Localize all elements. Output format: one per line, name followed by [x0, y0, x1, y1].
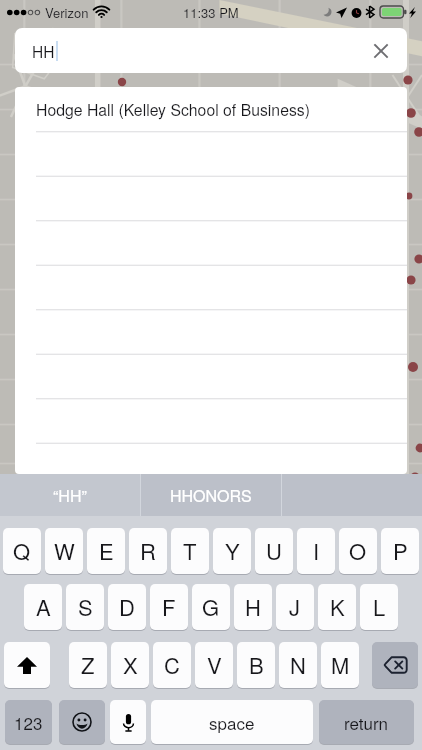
button[interactable]: Backspace: [372, 642, 418, 688]
button[interactable]: Y: [213, 528, 251, 574]
button[interactable]: O: [339, 528, 377, 574]
staticText: Hodge Hall (Kelley School of Business): [36, 98, 310, 121]
button[interactable]: F: [150, 584, 188, 630]
staticText: K: [330, 591, 345, 623]
button[interactable]: Emoji keyboard: [59, 700, 105, 744]
button[interactable]: [15, 221, 407, 266]
staticText: J: [289, 591, 301, 623]
button[interactable]: X: [111, 642, 149, 688]
button[interactable]: [15, 401, 407, 446]
button[interactable]: HHONORS: [141, 474, 281, 516]
staticText: R: [140, 535, 156, 567]
staticText: M: [331, 649, 350, 681]
staticText: L: [373, 591, 386, 623]
button[interactable]: [15, 356, 407, 401]
staticText: X: [123, 649, 138, 681]
button[interactable]: Q: [3, 528, 41, 574]
button[interactable]: M: [321, 642, 359, 688]
staticText: V: [207, 649, 222, 681]
staticText: H: [245, 591, 261, 623]
button[interactable]: return: [319, 700, 414, 744]
staticText: O: [349, 535, 367, 567]
staticText: return: [344, 710, 389, 734]
button[interactable]: K: [318, 584, 356, 630]
button[interactable]: Shift: [4, 642, 50, 688]
button[interactable]: P: [381, 528, 419, 574]
button[interactable]: A: [24, 584, 62, 630]
staticText: T: [183, 535, 197, 567]
staticText: N: [290, 649, 306, 681]
button[interactable]: N: [279, 642, 317, 688]
button[interactable]: “HH”: [0, 474, 140, 516]
button[interactable]: L: [360, 584, 398, 630]
button[interactable]: H: [234, 584, 272, 630]
button[interactable]: Dictate: [110, 700, 146, 744]
button[interactable]: [15, 176, 407, 221]
staticText: F: [162, 591, 176, 623]
button[interactable]: E: [87, 528, 125, 574]
button[interactable]: Clear search text: [366, 36, 396, 66]
button[interactable]: S: [66, 584, 104, 630]
staticText: C: [164, 649, 180, 681]
button[interactable]: HH: [15, 28, 407, 73]
button[interactable]: U: [255, 528, 293, 574]
button[interactable]: D: [108, 584, 146, 630]
button[interactable]: space: [151, 700, 313, 744]
button[interactable]: [15, 131, 407, 176]
staticText: “HH”: [53, 484, 87, 507]
staticText: B: [249, 649, 264, 681]
staticText: 11:33 PM: [183, 3, 239, 22]
staticText: HH: [32, 40, 55, 62]
staticText: G: [202, 591, 220, 623]
staticText: E: [99, 535, 114, 567]
button[interactable]: 123: [5, 700, 52, 744]
button[interactable]: [15, 311, 407, 356]
staticText: S: [78, 591, 93, 623]
button[interactable]: V: [195, 642, 233, 688]
button[interactable]: Hodge Hall (Kelley School of Business): [15, 87, 407, 131]
staticText: Q: [13, 535, 31, 567]
staticText: 123: [14, 710, 43, 734]
staticText: Y: [225, 535, 240, 567]
button[interactable]: C: [153, 642, 191, 688]
button[interactable]: J: [276, 584, 314, 630]
button[interactable]: G: [192, 584, 230, 630]
staticText: Z: [81, 649, 95, 681]
button[interactable]: R: [129, 528, 167, 574]
staticText: Verizon: [45, 3, 89, 22]
button[interactable]: I: [297, 528, 335, 574]
staticText: U: [266, 535, 282, 567]
button[interactable]: [15, 266, 407, 311]
staticText: HHONORS: [170, 484, 252, 507]
button[interactable]: T: [171, 528, 209, 574]
staticText: space: [209, 710, 255, 734]
staticText: I: [313, 535, 320, 567]
staticText: D: [119, 591, 135, 623]
button[interactable]: B: [237, 642, 275, 688]
staticText: W: [54, 535, 75, 567]
button[interactable]: Z: [69, 642, 107, 688]
button[interactable]: W: [45, 528, 83, 574]
staticText: P: [393, 535, 408, 567]
staticText: A: [36, 591, 51, 623]
